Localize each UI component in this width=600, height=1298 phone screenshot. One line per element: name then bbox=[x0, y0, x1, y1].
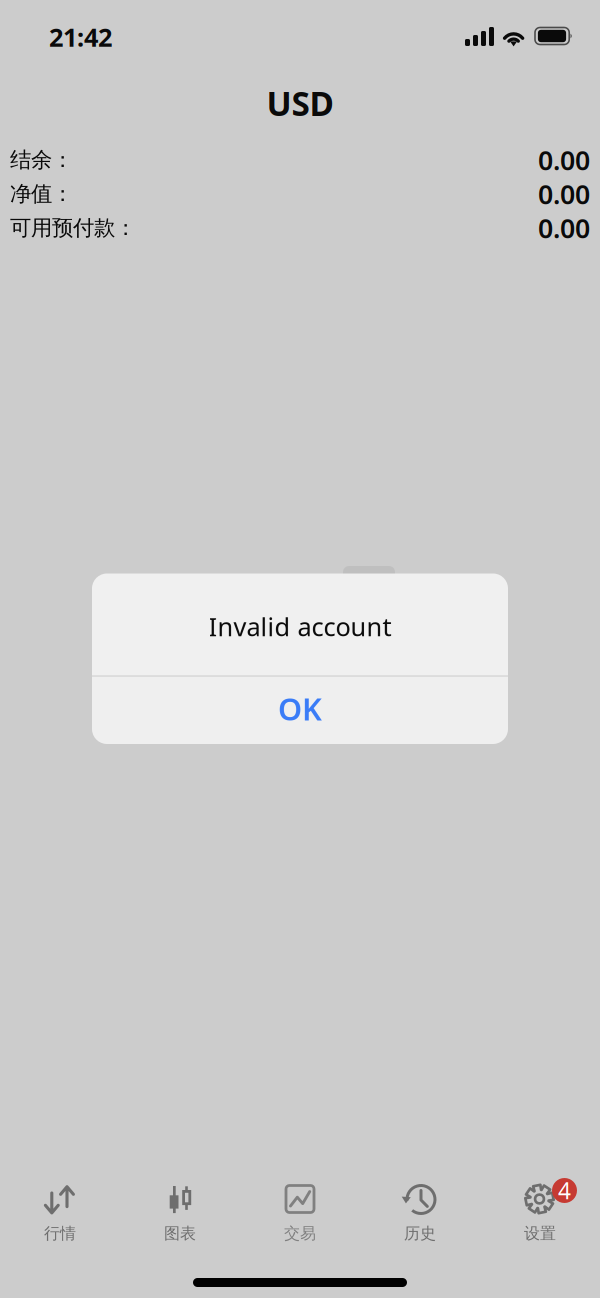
staticText: OK bbox=[278, 688, 322, 729]
staticText: 设置 bbox=[524, 1224, 556, 1243]
staticText: 0.00 bbox=[538, 142, 590, 178]
staticText: Invalid account bbox=[208, 610, 391, 643]
button[interactable]: 交易 bbox=[240, 1181, 360, 1247]
staticText: 21:42 bbox=[49, 20, 112, 54]
staticText: 交易 bbox=[284, 1224, 316, 1243]
staticText: USD bbox=[266, 81, 333, 125]
button[interactable]: 图表 bbox=[120, 1181, 240, 1247]
button[interactable]: 行情 bbox=[0, 1181, 120, 1247]
staticText: 净值： bbox=[10, 181, 73, 207]
staticText: 图表 bbox=[164, 1224, 196, 1243]
staticText: 结余： bbox=[10, 147, 73, 173]
button[interactable]: OK bbox=[92, 677, 508, 744]
staticText: 历史 bbox=[404, 1224, 436, 1243]
staticText: 4 bbox=[558, 1175, 571, 1205]
staticText: 可用预付款： bbox=[10, 215, 136, 241]
button[interactable]: 历史 bbox=[360, 1181, 480, 1247]
button[interactable]: 4 bbox=[480, 1181, 600, 1247]
staticText: 0.00 bbox=[538, 176, 590, 212]
staticText: 0.00 bbox=[538, 210, 590, 246]
staticText: 行情 bbox=[44, 1224, 76, 1243]
